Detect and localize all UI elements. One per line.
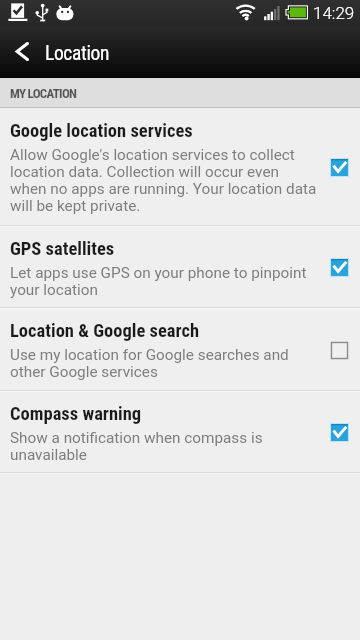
button[interactable]: Location & Google search [0, 309, 360, 390]
staticText: Allow Google's location services to coll… [10, 146, 318, 215]
staticText: Google location services [10, 120, 193, 142]
staticText: Use my location for Google searches and … [10, 346, 318, 381]
button[interactable]: GPS satellites [0, 227, 360, 307]
staticText: Let apps use GPS on your phone to pinpoi… [10, 264, 318, 299]
staticText: Show a notification when compass is unav… [10, 429, 318, 464]
staticText: 14:29 [313, 3, 355, 23]
button[interactable]: Google location services [0, 108, 360, 225]
staticText: MY LOCATION [10, 86, 77, 101]
staticText: Compass warning [10, 403, 142, 425]
staticText: GPS satellites [10, 238, 115, 260]
button[interactable]: Compass warning [0, 392, 360, 472]
staticText: Location [45, 42, 110, 65]
button[interactable]: Navigate up [0, 27, 44, 78]
staticText: Location & Google search [10, 320, 200, 342]
